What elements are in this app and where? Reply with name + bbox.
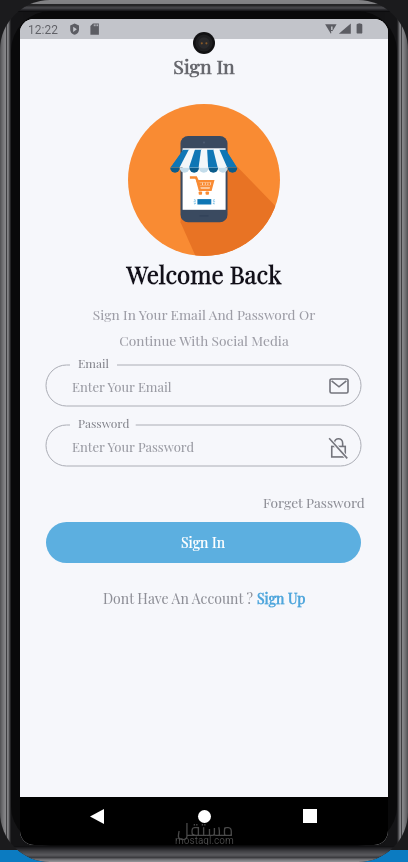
staticText: Sign In: [20, 53, 388, 79]
button[interactable]: Home: [188, 800, 220, 832]
other: Show password: [327, 435, 349, 457]
staticText: Sign In Your Email And Password Or: [20, 305, 388, 323]
staticText: Enter Your Password: [72, 438, 194, 455]
staticText: Welcome Back: [20, 258, 388, 290]
staticText: Sign In: [181, 533, 226, 552]
staticText: Email: [78, 355, 109, 371]
staticText: Forget Password: [263, 493, 365, 511]
other: Email: [329, 376, 349, 396]
button[interactable]: Password: [46, 425, 361, 466]
button[interactable]: Recent apps: [294, 800, 326, 832]
button[interactable]: Forget Password: [261, 489, 367, 515]
button[interactable]: Sign Up: [257, 589, 306, 608]
staticText: مستقل: [177, 813, 234, 845]
staticText: Enter Your Email: [72, 378, 172, 395]
button[interactable]: Sign In: [46, 522, 361, 563]
staticText: Sign Up: [257, 589, 306, 608]
button[interactable]: Back: [81, 800, 113, 832]
staticText: Dont Have An Account ?: [103, 589, 257, 608]
button[interactable]: Email: [46, 365, 361, 406]
staticText: mostaql.com: [175, 835, 234, 845]
staticText: 12:22: [28, 23, 58, 37]
staticText: Password: [78, 415, 130, 431]
staticText: Continue With Social Media: [20, 331, 388, 349]
